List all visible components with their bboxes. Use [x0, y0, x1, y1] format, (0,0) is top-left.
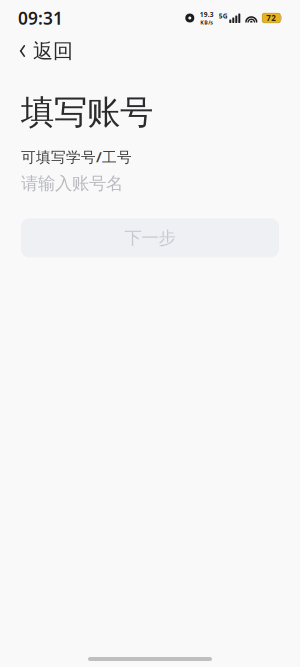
staticText: 请输入账号名 — [21, 173, 123, 194]
button[interactable]: 返回 — [0, 36, 91, 66]
staticText: 19.3 — [200, 10, 214, 19]
staticText: 可填写学号/工号 — [21, 147, 132, 166]
staticText: 下一步 — [124, 227, 175, 249]
staticText: 返回 — [33, 39, 73, 63]
staticText: 5G — [219, 12, 228, 20]
button[interactable]: 请输入账号名 — [0, 166, 300, 200]
staticText: 09:31 — [18, 6, 63, 29]
staticText: KB/s — [200, 19, 213, 26]
staticText: 72 — [266, 13, 276, 23]
button[interactable]: 下一步 — [21, 218, 279, 257]
staticText: 填写账号 — [21, 92, 153, 133]
